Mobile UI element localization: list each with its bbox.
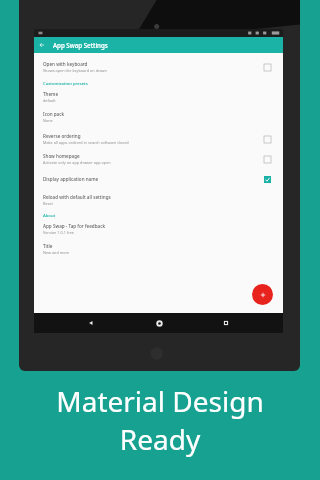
- button[interactable]: Navigate up: [34, 37, 50, 53]
- staticText: About: [43, 213, 56, 219]
- button[interactable]: Title: [34, 240, 283, 258]
- staticText: Title: [43, 243, 53, 249]
- staticText: Activate only on app drawer app open: [43, 160, 111, 165]
- button[interactable]: Theme: [34, 88, 283, 106]
- button[interactable]: Toggle Show homepage: [260, 152, 274, 166]
- staticText: Theme: [43, 91, 59, 97]
- button[interactable]: Show homepage: [34, 149, 283, 169]
- staticText: Reload with default all settings: [43, 194, 111, 200]
- button[interactable]: Home: [149, 313, 169, 333]
- staticText: Shows open the keyboard on drawn: [43, 68, 107, 73]
- staticText: Show homepage: [43, 153, 80, 159]
- staticText: Open with keyboard: [43, 61, 88, 67]
- button[interactable]: Toggle Open with keyboard: [260, 60, 274, 74]
- button[interactable]: Display application name: [34, 169, 283, 189]
- staticText: Reset: [43, 201, 53, 206]
- button[interactable]: Back: [81, 313, 101, 333]
- staticText: Ready: [0, 420, 320, 458]
- button[interactable]: Toggle Reverse ordering: [260, 132, 274, 146]
- staticText: Customization presets: [43, 81, 88, 87]
- button[interactable]: Recent apps: [216, 313, 236, 333]
- button[interactable]: App Swap - Tap for feedback: [34, 220, 283, 238]
- button[interactable]: Toggle Display application name: [260, 172, 274, 186]
- button[interactable]: Reverse ordering: [34, 129, 283, 149]
- staticText: Material Design: [0, 382, 320, 420]
- staticText: Display application name: [43, 176, 99, 182]
- staticText: Reverse ordering: [43, 133, 81, 139]
- button[interactable]: Icon pack: [34, 108, 283, 126]
- button[interactable]: Open with keyboard: [34, 57, 283, 77]
- staticText: Make all apps ordered in search software…: [43, 140, 129, 145]
- button[interactable]: Reload with default all settings: [34, 191, 283, 209]
- button[interactable]: Add: [252, 284, 273, 305]
- staticText: default: [43, 98, 56, 103]
- staticText: App Swap - Tap for feedback: [43, 223, 106, 229]
- staticText: Icon pack: [43, 111, 65, 117]
- staticText: None: [43, 118, 53, 123]
- staticText: App Swap Settings: [53, 41, 108, 49]
- staticText: New and more: [43, 250, 70, 255]
- staticText: Version 1.0.1 free: [43, 230, 74, 235]
